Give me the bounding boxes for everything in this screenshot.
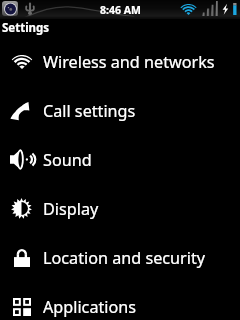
button[interactable]: Display — [0, 184, 240, 233]
button[interactable]: Wireless and networks — [0, 37, 240, 86]
staticText: Settings — [2, 20, 50, 36]
staticText: Applications — [43, 296, 137, 318]
staticText: 8:46 AM — [100, 3, 141, 17]
button[interactable]: Applications — [0, 282, 240, 320]
staticText: Location and security — [43, 247, 206, 269]
staticText: Call settings — [43, 100, 136, 122]
staticText: Display — [43, 198, 99, 220]
button[interactable]: Sound — [0, 135, 240, 184]
staticText: Wireless and networks — [43, 51, 215, 73]
button[interactable]: Call settings — [0, 86, 240, 135]
staticText: Sound — [43, 149, 92, 171]
button[interactable]: Location and security — [0, 233, 240, 282]
